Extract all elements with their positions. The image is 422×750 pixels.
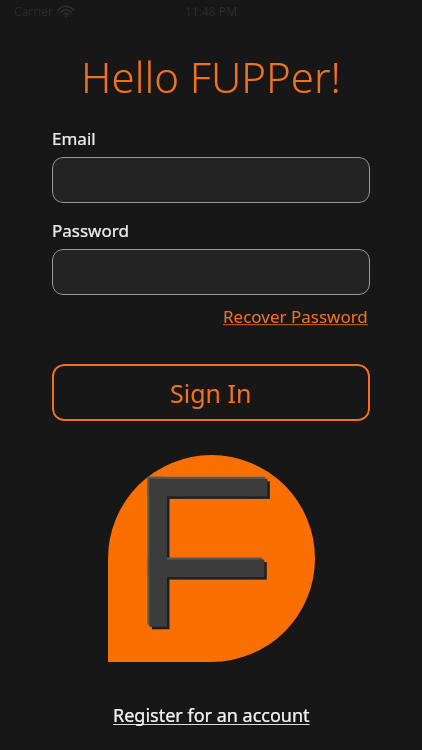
button[interactable]: Register for an account <box>107 699 316 732</box>
staticText: 11:48 PM <box>185 3 238 19</box>
staticText: Email <box>52 127 96 150</box>
staticText: Hello FUPPer! <box>0 48 422 105</box>
button[interactable]: Sign In <box>52 364 370 421</box>
staticText: Carrier <box>14 3 54 19</box>
staticText: Register for an account <box>113 703 310 728</box>
staticText: Recover Password <box>223 305 368 328</box>
button[interactable]: Recover Password <box>221 303 370 330</box>
staticText: Sign In <box>170 376 252 410</box>
button[interactable] <box>52 157 370 203</box>
button[interactable] <box>52 249 370 295</box>
staticText: Password <box>52 219 129 242</box>
